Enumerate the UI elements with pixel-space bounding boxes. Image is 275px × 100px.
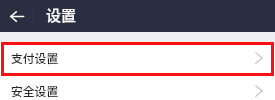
button[interactable]: 安全设置 — [0, 75, 275, 100]
button[interactable]: 支付设置 — [0, 42, 275, 75]
staticText: 支付设置 — [11, 49, 59, 66]
staticText: 设置 — [46, 4, 77, 26]
staticText: 安全设置 — [11, 82, 59, 99]
button[interactable]: Back — [0, 0, 32, 32]
